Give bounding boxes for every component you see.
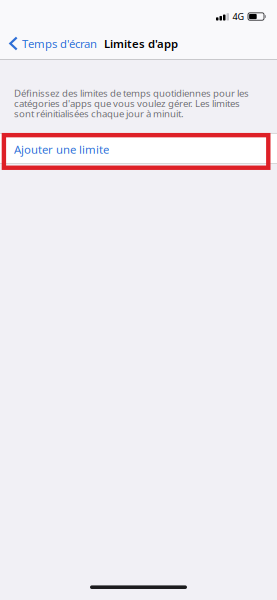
button[interactable]: Temps d'écran: [0, 30, 104, 57]
button[interactable]: Limites d'app: [104, 30, 178, 57]
staticText: Limites d'app: [104, 36, 178, 51]
staticText: Temps d'écran: [22, 36, 97, 51]
staticText: Ajouter une limite: [14, 142, 109, 157]
staticText: Définissez des limites de temps quotidie…: [14, 87, 249, 120]
button[interactable]: Ajouter une limite: [0, 133, 277, 164]
staticText: 4G: [232, 10, 244, 22]
